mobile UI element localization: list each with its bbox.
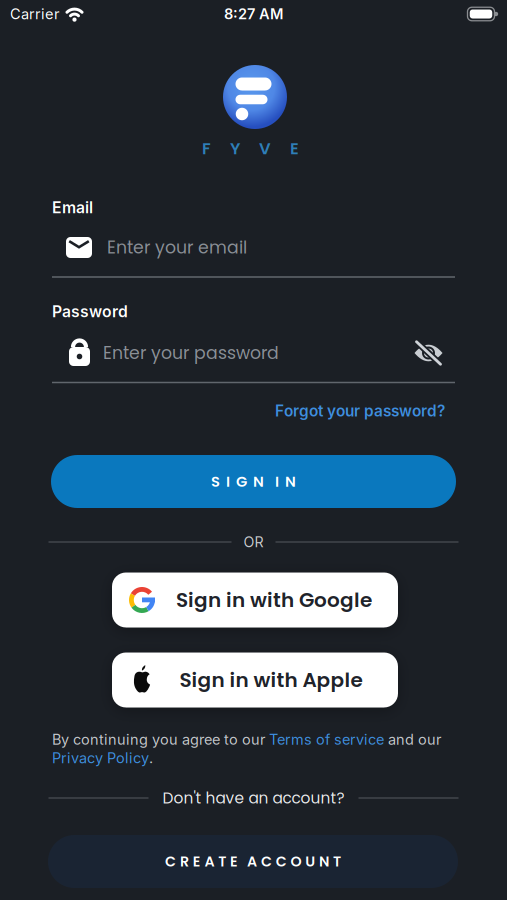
- staticText: C: [165, 852, 176, 871]
- staticText: C: [261, 852, 272, 871]
- staticText: By continuing you agree to our: [52, 731, 269, 748]
- staticText: A: [204, 852, 214, 871]
- staticText: Y: [230, 137, 240, 160]
- staticText: Don't have an account?: [162, 787, 344, 809]
- staticText: U: [305, 852, 315, 871]
- staticText: Privacy Policy: [52, 749, 149, 767]
- button[interactable]: Show password: [415, 341, 455, 365]
- staticText: T: [333, 852, 341, 871]
- staticText: .: [149, 749, 153, 767]
- button[interactable]: S: [51, 455, 456, 508]
- staticText: N: [319, 852, 329, 871]
- staticText: OR: [243, 533, 263, 551]
- staticText: R: [180, 852, 189, 871]
- staticText: N: [253, 471, 264, 492]
- staticText: I: [275, 471, 279, 492]
- staticText: S: [211, 471, 220, 492]
- staticText: Carrier: [10, 5, 59, 23]
- staticText: and our: [384, 731, 441, 748]
- staticText: Enter your email: [107, 235, 247, 260]
- staticText: Sign in with Google: [176, 586, 372, 614]
- staticText: C: [276, 852, 287, 871]
- staticText: O: [290, 852, 301, 871]
- button[interactable]: Privacy Policy: [52, 749, 149, 767]
- staticText: 8:27 AM: [224, 5, 283, 23]
- button[interactable]: Sign in with Google: [112, 572, 398, 627]
- button[interactable]: Terms of service: [269, 731, 384, 748]
- button[interactable]: C: [48, 835, 458, 888]
- staticText: G: [236, 471, 247, 492]
- staticText: I: [226, 471, 230, 492]
- staticText: F: [202, 137, 211, 160]
- staticText: Email: [52, 198, 93, 217]
- staticText: Password: [52, 302, 128, 321]
- staticText: Sign in with Apple: [179, 666, 362, 694]
- staticText: Enter your password: [103, 341, 279, 365]
- staticText: E: [193, 852, 201, 871]
- staticText: N: [285, 471, 296, 492]
- button[interactable]: Forgot your password?: [52, 402, 445, 420]
- staticText: Terms of service: [269, 731, 384, 748]
- staticText: T: [218, 852, 226, 871]
- staticText: A: [247, 852, 257, 871]
- staticText: E: [230, 852, 238, 871]
- staticText: E: [290, 137, 299, 160]
- button[interactable]: Sign in with Apple: [112, 652, 398, 707]
- staticText: Forgot your password?: [275, 402, 445, 420]
- staticText: V: [259, 137, 271, 160]
